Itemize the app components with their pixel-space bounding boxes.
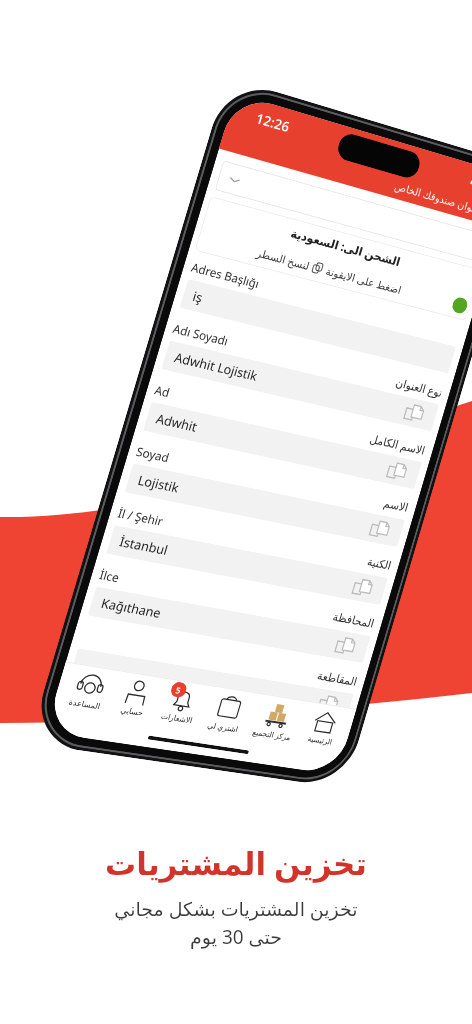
staticText: Lojistik [136, 471, 181, 496]
staticText: iş [191, 287, 205, 306]
button[interactable]: iş [179, 279, 456, 374]
staticText: 5 [174, 684, 183, 696]
staticText: عنوان صندوقك الخاص [393, 178, 472, 216]
staticText: الكنية [366, 555, 393, 572]
button[interactable] [215, 160, 472, 263]
button[interactable]: Kağıthane [88, 586, 371, 663]
staticText: Adwhit Lojistik [172, 348, 260, 385]
staticText: Kağıthane [99, 594, 164, 622]
staticText: حسابي [119, 706, 145, 718]
staticText: Soyad [135, 443, 171, 465]
button[interactable]: Adwhit Lojistik [161, 340, 439, 431]
staticText: اشتري لي [206, 719, 240, 734]
staticText: 12:26 [254, 108, 292, 136]
button[interactable]: Adwhit [143, 402, 422, 489]
staticText: İl / Şehir [116, 505, 165, 529]
button[interactable]: المساعدة [67, 668, 112, 711]
staticText: المقاطعة [316, 669, 359, 689]
staticText: Adı Soyadı [171, 320, 231, 349]
button[interactable]: اشتري لي [205, 690, 250, 734]
staticText: نوع العنوان [394, 374, 445, 400]
staticText: الاشعارات [160, 712, 194, 725]
staticText: لنسخ السطر [255, 245, 311, 273]
staticText: تخزين المشتريات بشكل مجاني حتى 30 يوم [114, 896, 358, 950]
staticText: اضغط على الايقونة [324, 263, 403, 297]
staticText: الاسم [382, 497, 410, 515]
staticText: İlce [98, 566, 122, 585]
button[interactable]: حسابي [115, 675, 157, 718]
staticText: Ad [153, 381, 173, 400]
staticText: الرئيسية [307, 735, 333, 746]
staticText: المساعدة [68, 698, 102, 711]
button[interactable]: الاشعارات [159, 682, 203, 725]
staticText: مركز التجميع [251, 726, 293, 742]
staticText: الشحن الى: السعودية [289, 225, 402, 269]
button[interactable]: الرئيسية [304, 706, 343, 747]
button[interactable]: مركز التجميع [251, 697, 302, 742]
staticText: المحافظة [331, 610, 376, 630]
button[interactable]: İstanbul [106, 525, 388, 605]
button[interactable] [69, 648, 354, 721]
button[interactable]: Lojistik [124, 463, 405, 547]
staticText: Adres Başlığı [189, 259, 262, 291]
staticText: تخزين المشتريات [105, 842, 367, 884]
staticText: İstanbul [117, 532, 171, 559]
staticText: الاسم الكامل [368, 431, 428, 458]
staticText: Adwhit [154, 410, 200, 436]
